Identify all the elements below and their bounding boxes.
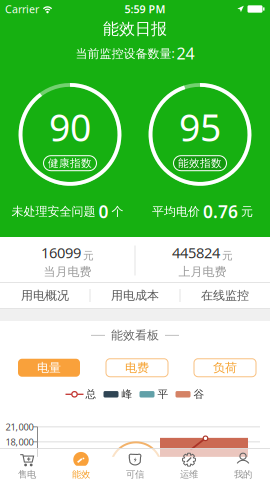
staticText: 能效指数 [178,157,222,170]
staticText: 谷 [193,388,204,401]
staticText: 5:59 PM [124,2,165,16]
button[interactable]: 能效 [54,449,108,480]
button[interactable]: 健康指数 [43,156,96,171]
staticText: 0.76 [203,200,238,223]
staticText: 用电概况 [21,288,69,303]
button[interactable]: 运维 [162,449,216,480]
staticText: 电费 [125,360,149,375]
staticText: 0 [98,200,108,223]
staticText: 用电成本 [111,288,159,303]
staticText: 在线监控 [201,288,249,303]
staticText: 16099 [41,243,81,262]
staticText: 负荷 [213,360,237,375]
staticText: 21,000 [5,421,33,433]
staticText: 未处理安全问题 [11,204,95,219]
staticText: 运维 [180,469,198,480]
button[interactable]: 电费 [106,359,168,377]
button[interactable]: 我的 [216,449,270,480]
button[interactable]: 售电 [0,449,54,480]
staticText: 18,000 [5,436,33,448]
staticText: 能效 [72,469,90,480]
button[interactable]: 负荷 [194,359,256,377]
staticText: 平均电价 [152,204,200,219]
staticText: 健康指数 [48,157,92,170]
staticText: 上月电费 [178,264,226,279]
button[interactable]: 能效指数 [173,156,226,171]
staticText: 90 [49,102,91,152]
button[interactable]: 电量 [18,359,80,377]
staticText: 元 [222,249,233,262]
button[interactable]: 可信 [108,449,162,480]
staticText: 能效日报 [103,19,167,39]
staticText: 元 [241,204,253,219]
staticText: 电量 [37,360,61,375]
staticText: 平 [157,388,168,401]
staticText: 445824 [172,243,220,262]
staticText: 售电 [18,469,36,480]
staticText: 95 [179,102,221,152]
staticText: 峰 [121,388,132,401]
button[interactable]: 用电概况 [0,282,90,309]
staticText: 个 [111,204,123,219]
staticText: 我的 [234,469,252,480]
staticText: 元 [83,249,94,262]
staticText: Carrier [5,2,39,16]
staticText: 当月电费 [43,264,91,279]
staticText: 24 [176,43,194,64]
staticText: 可信 [126,469,144,480]
staticText: 能效看板 [111,328,159,343]
staticText: 当前监控设备数量: [75,45,174,61]
button[interactable]: 在线监控 [180,282,270,309]
staticText: 总 [85,388,96,401]
button[interactable]: 用电成本 [90,282,180,309]
